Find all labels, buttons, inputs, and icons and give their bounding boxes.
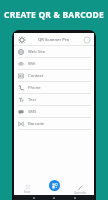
staticText: Wifi xyxy=(28,61,36,67)
button[interactable]: Scan code xyxy=(49,180,60,191)
button[interactable]: SMS xyxy=(14,106,94,118)
button[interactable]: Text xyxy=(14,94,94,106)
button[interactable]: Phone xyxy=(14,82,94,94)
button[interactable]: Settings xyxy=(17,35,26,44)
staticText: Contact xyxy=(28,73,44,79)
staticText: CREATE QR & BARCODE xyxy=(4,9,104,21)
staticText: Text xyxy=(28,97,37,103)
button[interactable]: Contact xyxy=(14,70,94,82)
staticText: QR Scanner Pro xyxy=(38,37,70,43)
button[interactable]: Web Site xyxy=(14,46,94,58)
staticText: Barcode xyxy=(28,121,45,127)
button[interactable]: Wifi xyxy=(14,58,94,70)
button[interactable]: Barcode xyxy=(14,118,94,130)
button[interactable]: Generate xyxy=(67,184,94,195)
button[interactable]: Profile xyxy=(82,35,91,44)
staticText: Generate xyxy=(74,191,87,195)
staticText: Scan xyxy=(24,190,31,194)
staticText: SMS xyxy=(28,109,37,115)
staticText: Phone xyxy=(28,85,41,91)
staticText: Web Site xyxy=(28,49,46,55)
button[interactable]: Scan xyxy=(14,184,40,195)
